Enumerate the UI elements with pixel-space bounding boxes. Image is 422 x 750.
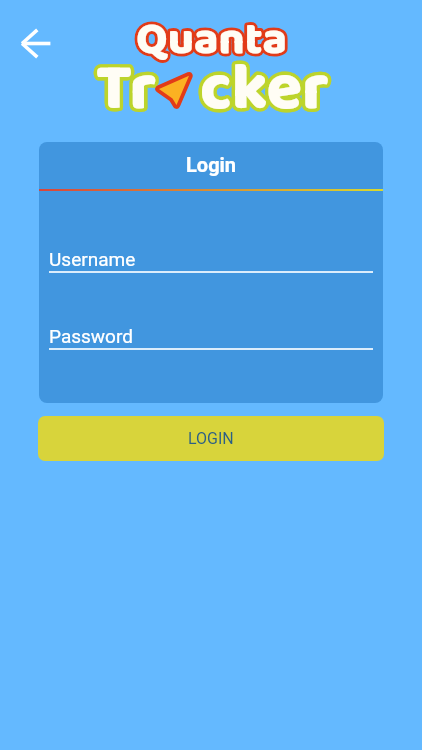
staticText: Password: [49, 325, 133, 347]
button[interactable]: Username: [49, 248, 373, 284]
button[interactable]: Back: [12, 20, 60, 68]
staticText: LOGIN: [188, 429, 234, 448]
staticText: Tr: [96, 38, 157, 142]
staticText: Login: [186, 153, 237, 176]
staticText: Username: [49, 248, 136, 270]
staticText: cker: [200, 38, 329, 142]
staticText: Tr: [96, 38, 157, 142]
staticText: cker: [200, 38, 329, 142]
staticText: Quanta: [136, 4, 287, 76]
button[interactable]: Password: [49, 325, 373, 361]
staticText: Quanta: [136, 4, 287, 76]
button[interactable]: LOGIN: [38, 416, 384, 461]
